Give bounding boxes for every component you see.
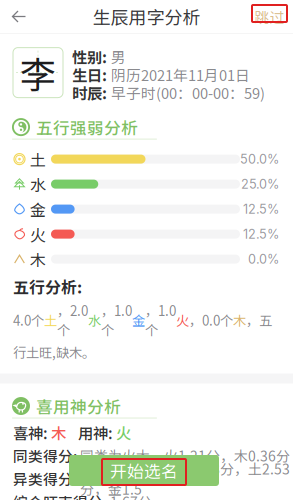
- staticText: 五行强弱分析: [36, 115, 138, 139]
- button[interactable]: 返回: [0, 0, 38, 33]
- staticText: 木: [30, 247, 46, 271]
- staticText: 水: [88, 310, 101, 330]
- staticText: 早子时(00：00-00：59): [111, 82, 265, 103]
- staticText: 异类为水土金，水0.48分，土2.53分，金1.5: [80, 458, 290, 499]
- staticText: ，2.0个: [57, 301, 88, 339]
- staticText: ，1.0个: [145, 301, 176, 339]
- staticText: 12.5%: [243, 226, 279, 242]
- staticText: 土: [30, 147, 46, 171]
- staticText: 50.0%: [240, 151, 279, 167]
- staticText: 用神:: [66, 421, 116, 444]
- staticText: 1.67分: [110, 491, 152, 500]
- staticText: 时辰:: [72, 81, 107, 104]
- staticText: ，1.0个: [101, 301, 132, 339]
- staticText: 异类得分:: [13, 468, 80, 489]
- staticText: 木: [51, 421, 66, 444]
- staticText: 水: [30, 172, 46, 196]
- staticText: ，五: [246, 310, 272, 330]
- staticText: 生日:: [72, 63, 107, 86]
- staticText: 4.0个: [13, 310, 44, 330]
- staticText: 同类为火木，火1.21分，木0.36分: [80, 445, 290, 466]
- staticText: 阴历2021年11月01日: [111, 64, 250, 85]
- staticText: 喜用神分析: [36, 394, 121, 418]
- staticText: 开始选名: [110, 458, 178, 482]
- staticText: 12.5%: [243, 201, 279, 217]
- staticText: ，0.0个: [189, 310, 233, 330]
- staticText: 火: [116, 421, 131, 444]
- staticText: 土: [44, 310, 57, 330]
- staticText: 火: [176, 310, 189, 330]
- staticText: 性别:: [72, 45, 107, 68]
- staticText: 喜神:: [13, 421, 51, 444]
- staticText: 生辰用字分析: [92, 3, 200, 30]
- button[interactable]: 开始选名: [69, 455, 219, 486]
- staticText: 金: [30, 197, 46, 221]
- button[interactable]: 跳过: [252, 8, 293, 25]
- staticText: 木: [233, 310, 246, 330]
- staticText: 金: [132, 310, 145, 330]
- staticText: 同类得分:: [13, 445, 80, 466]
- staticText: 五行分析:: [13, 275, 82, 298]
- staticText: 李: [20, 46, 56, 99]
- staticText: 男: [111, 46, 126, 67]
- staticText: 行土旺,缺木。: [13, 342, 95, 361]
- staticText: 综合旺克得分:: [13, 491, 110, 500]
- staticText: 0.0%: [248, 251, 279, 267]
- staticText: 跳过: [254, 6, 284, 27]
- staticText: 火: [30, 222, 46, 246]
- staticText: 25.0%: [241, 176, 279, 192]
